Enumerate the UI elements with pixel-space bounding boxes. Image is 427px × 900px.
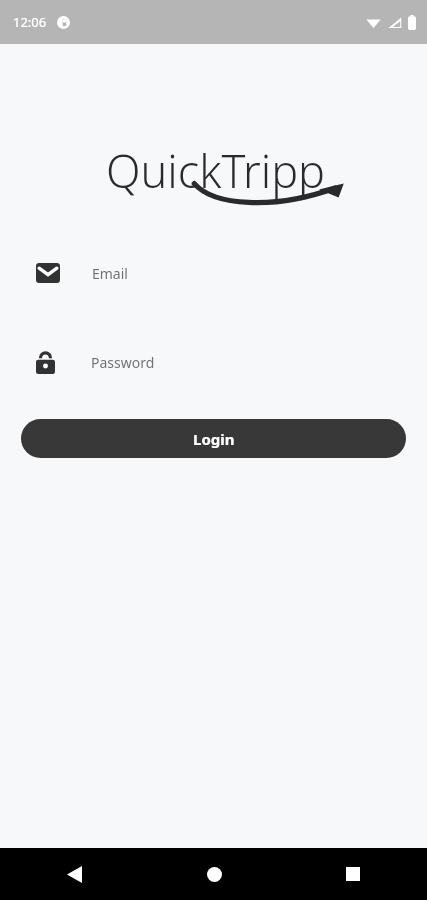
staticText: Password	[91, 353, 155, 372]
staticText: QuickTripp	[106, 140, 326, 201]
button[interactable]: Back	[52, 852, 96, 896]
staticText: Email	[92, 264, 128, 283]
button[interactable]: Recents	[331, 852, 375, 896]
button[interactable]: Login	[21, 419, 406, 458]
other: Password	[36, 351, 55, 374]
button[interactable]: Password	[0, 341, 427, 383]
staticText: Login	[193, 429, 235, 449]
other: Email	[36, 263, 60, 283]
button[interactable]: Email	[0, 252, 427, 294]
button[interactable]: Home	[192, 852, 236, 896]
staticText: 12:06	[13, 13, 47, 31]
